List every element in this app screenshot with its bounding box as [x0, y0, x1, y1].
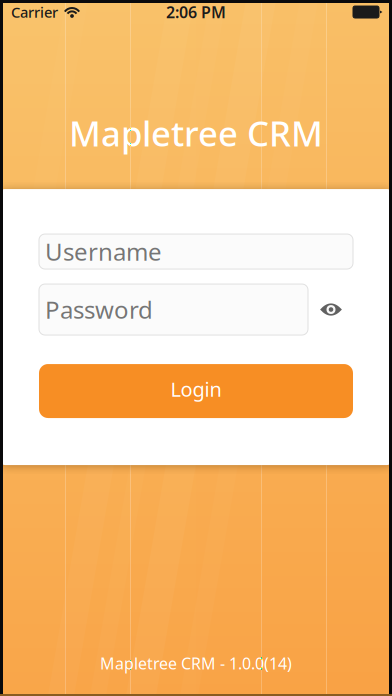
- staticText: Username: [45, 236, 162, 267]
- staticText: Password: [45, 294, 153, 325]
- staticText: Mapletree CRM: [69, 110, 323, 156]
- button[interactable]: Login: [39, 364, 353, 418]
- staticText: Login: [170, 376, 221, 402]
- staticText: Carrier: [11, 2, 58, 22]
- button[interactable]: Show password: [308, 284, 354, 335]
- staticText: 2:06 PM: [166, 1, 226, 23]
- staticText: Mapletree CRM - 1.0.0(14): [100, 653, 292, 674]
